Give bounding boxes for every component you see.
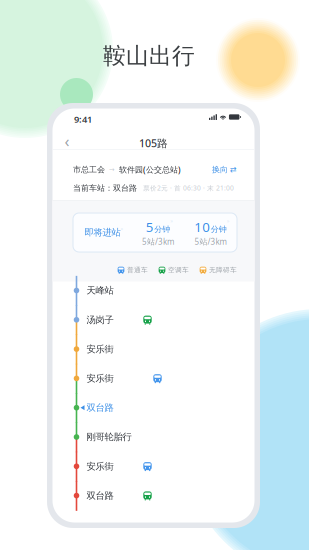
button[interactable]: 汤岗子 [86,311,231,329]
button[interactable]: 安乐街 [86,340,231,358]
staticText: 无障碍车 [209,266,237,274]
staticText: » [120,225,123,232]
staticText: 换向 [212,165,228,174]
staticText: 票价2元 · 首 06:30 · 末 21:00 [143,184,234,192]
staticText: ‹ [64,130,69,152]
staticText: 天峰站 [86,285,113,296]
staticText: 普通车 [127,266,148,274]
staticText: 9:41 [74,113,92,125]
staticText: 软件园(公交总站) [119,164,181,175]
staticText: » [170,217,173,224]
button[interactable]: Back [58,132,76,150]
staticText: 分钟 [211,224,227,234]
staticText: 105路 [139,136,168,150]
staticText: 5站/3km [194,236,226,247]
button[interactable]: 换向 [212,164,237,175]
button[interactable]: 双台路 [86,487,231,505]
button[interactable]: 天峰站 [86,281,231,299]
staticText: 安乐街 [86,373,113,384]
staticText: 当前车站：双台路 [73,183,137,193]
staticText: 市总工会 [73,165,105,174]
staticText: 安乐街 [86,343,113,355]
staticText: 双台路 [86,402,113,413]
staticText: 10 [194,218,210,236]
staticText: 鞍山出行 [103,42,195,70]
staticText: 刚哥轮胎行 [86,431,131,443]
staticText: 即将进站 [84,227,120,238]
staticText: 5 [146,218,154,236]
staticText: 安乐街 [86,461,113,472]
staticText: 空调车 [168,266,189,274]
staticText: 汤岗子 [86,314,113,326]
staticText: 分钟 [154,224,170,234]
staticText: » [227,217,230,224]
staticText: 5站/3km [142,236,174,247]
button[interactable]: 安乐街 [86,369,231,387]
button[interactable]: 安乐街 [86,457,231,475]
staticText: ⇄ [230,165,237,174]
button[interactable]: 刚哥轮胎行 [86,428,231,446]
staticText: 双台路 [86,490,113,501]
button[interactable]: 双台路 [80,399,225,417]
staticText: → [109,166,115,173]
